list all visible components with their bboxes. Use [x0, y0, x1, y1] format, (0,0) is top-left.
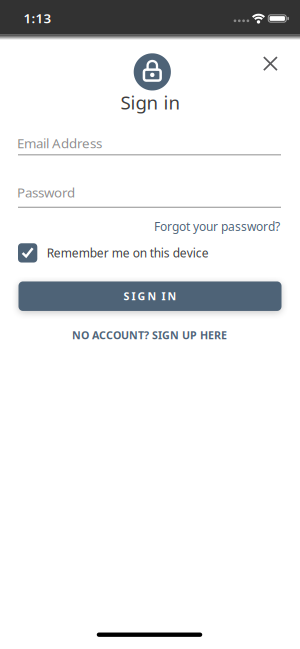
staticText: S I G N I N — [123, 289, 176, 303]
staticText: Sign in — [120, 90, 180, 115]
button[interactable]: Forgot your password? — [154, 218, 280, 234]
staticText: Email Address — [17, 134, 102, 152]
button[interactable]: NO ACCOUNT? SIGN UP HERE — [72, 328, 227, 342]
staticText: Forgot your password? — [154, 218, 280, 234]
button[interactable]: Password — [18, 184, 281, 210]
button[interactable]: Remember me on this device — [18, 243, 209, 262]
staticText: Password — [17, 183, 75, 201]
button[interactable]: S I G N I N — [18, 281, 281, 311]
staticText: 1:13 — [23, 9, 51, 27]
staticText: Remember me on this device — [47, 245, 209, 261]
button[interactable]: Email Address — [18, 132, 281, 158]
button[interactable] — [263, 56, 278, 71]
staticText: NO ACCOUNT? SIGN UP HERE — [72, 328, 227, 342]
